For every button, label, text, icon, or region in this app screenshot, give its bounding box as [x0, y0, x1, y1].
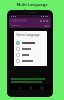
button[interactable] [16, 52, 45, 58]
button[interactable]: Home [28, 85, 33, 90]
button[interactable] [16, 40, 45, 46]
button[interactable] [16, 46, 45, 52]
button[interactable] [9, 18, 51, 23]
staticText: Multi Language [16, 2, 48, 7]
button[interactable] [16, 58, 45, 64]
button[interactable]: Recent apps [39, 85, 44, 90]
button[interactable]: Back [16, 85, 21, 90]
staticText: Support [24, 8, 40, 13]
staticText: Select Language [16, 33, 40, 37]
